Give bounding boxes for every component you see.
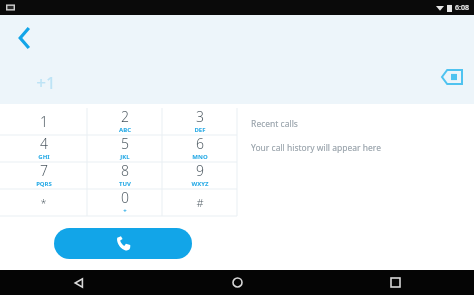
staticText: +1	[36, 71, 56, 94]
staticText: 4	[40, 134, 48, 153]
staticText: 2	[121, 107, 129, 126]
button[interactable]: 8	[87, 162, 162, 189]
button[interactable]: 6	[162, 135, 237, 162]
staticText: Your call history will appear here	[251, 142, 381, 154]
staticText: 0	[121, 188, 129, 207]
button[interactable]: 3	[162, 108, 237, 135]
button[interactable]: 2	[87, 108, 162, 135]
staticText: United States (+1)	[36, 103, 99, 113]
staticText: Recent calls	[251, 118, 298, 130]
staticText: #	[196, 195, 204, 210]
button[interactable]: Recents	[316, 270, 474, 295]
staticText: WXYZ	[191, 180, 209, 188]
button[interactable]: #	[162, 189, 237, 216]
button[interactable]: Backspace	[438, 63, 466, 91]
staticText: 6:08	[455, 3, 469, 13]
staticText: 6	[196, 134, 204, 153]
button[interactable]: 5	[87, 135, 162, 162]
button[interactable]: *	[0, 189, 87, 216]
staticText: 8	[121, 161, 129, 180]
staticText: 1	[40, 112, 48, 131]
staticText: TUV	[119, 180, 131, 188]
button[interactable]: 7	[0, 162, 87, 189]
button[interactable]: Back	[8, 21, 42, 55]
staticText: DEF	[194, 126, 206, 134]
button[interactable]: 9	[162, 162, 237, 189]
staticText: PQRS	[36, 180, 52, 188]
button[interactable]: United States (+1)	[36, 103, 111, 113]
staticText: 3	[196, 107, 204, 126]
button[interactable]: 1	[0, 108, 87, 135]
staticText: *	[40, 195, 47, 210]
staticText: ABC	[119, 126, 131, 134]
button[interactable]: Back	[0, 270, 158, 295]
button[interactable]: 4	[0, 135, 87, 162]
staticText: GHI	[38, 153, 50, 161]
staticText: 5	[121, 134, 129, 153]
button[interactable]: 0	[87, 189, 162, 216]
staticText: 7	[40, 161, 48, 180]
button[interactable]: Home	[158, 270, 316, 295]
staticText: MNO	[192, 153, 208, 161]
staticText: 9	[196, 161, 204, 180]
staticText: JKL	[120, 153, 130, 161]
button[interactable]: Call	[54, 228, 192, 259]
staticText: +	[123, 207, 127, 215]
